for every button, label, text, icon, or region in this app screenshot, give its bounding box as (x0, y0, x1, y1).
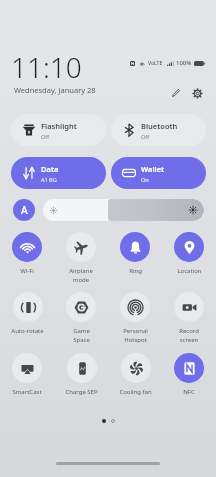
button[interactable]: SmartCast (12, 353, 42, 396)
button[interactable]: Bluetooth (111, 114, 206, 146)
button[interactable]: Settings (188, 84, 206, 102)
staticText: On (141, 176, 149, 183)
button[interactable]: Game Space (66, 292, 96, 343)
button[interactable]: Record screen (174, 292, 204, 343)
staticText: 11:10 (11, 48, 82, 86)
button[interactable]: Data (11, 157, 106, 189)
button[interactable]: Cooling fan (119, 353, 152, 396)
staticText: Wednesday, January 28 (14, 85, 96, 95)
button[interactable]: Wi-Fi (12, 232, 42, 275)
staticText: SmartCast (12, 388, 42, 396)
button[interactable]: Ring (120, 232, 150, 275)
staticText: Charge SEP (65, 388, 98, 396)
staticText: Game Space (73, 327, 90, 343)
staticText: Ring (129, 267, 142, 275)
button[interactable]: NFC (174, 353, 204, 396)
staticText: Auto-rotate (11, 327, 44, 335)
staticText: Cooling fan (119, 388, 152, 396)
button[interactable]: Wallet (111, 157, 206, 189)
staticText: Wallet (141, 164, 165, 174)
staticText: Data (41, 164, 59, 174)
button[interactable]: Airplane mode (66, 232, 96, 283)
staticText: NFC (183, 388, 195, 396)
button[interactable]: Edit tiles (167, 84, 185, 102)
staticText: Wi-Fi (20, 267, 34, 275)
button[interactable]: Auto brightness (13, 199, 35, 221)
button[interactable]: Brightness (43, 199, 204, 221)
staticText: Record screen (179, 327, 199, 343)
button[interactable]: Location (174, 232, 204, 275)
button[interactable]: Personal Hotspot (120, 292, 150, 343)
staticText: A1 BG (41, 176, 57, 183)
button[interactable]: Flashlight (11, 114, 106, 146)
staticText: 100% (176, 59, 192, 67)
staticText: Airplane mode (69, 267, 93, 283)
staticText: A (21, 203, 28, 217)
button[interactable]: Charge SEP (65, 353, 98, 396)
button[interactable]: Auto-rotate (11, 292, 44, 335)
staticText: Off (41, 133, 50, 140)
staticText: Location (177, 267, 202, 275)
staticText: Bluetooth (141, 121, 178, 131)
staticText: Flashlight (41, 121, 77, 131)
staticText: Personal Hotspot (123, 327, 148, 343)
staticText: Off (141, 133, 150, 140)
staticText: VoLTE (148, 60, 163, 67)
